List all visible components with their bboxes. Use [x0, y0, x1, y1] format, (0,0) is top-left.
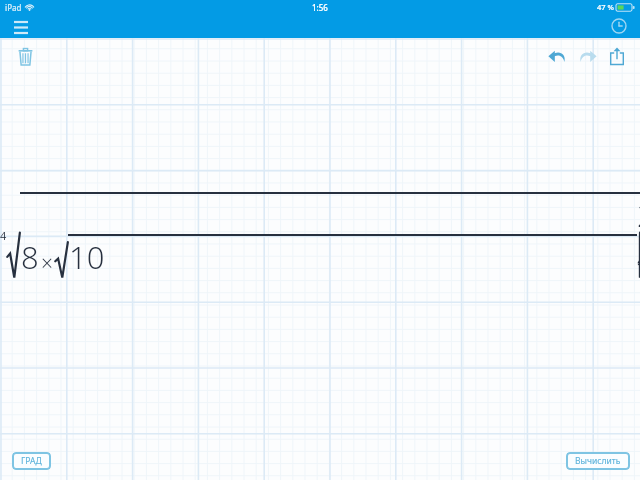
staticText: 10	[69, 236, 105, 278]
staticText: 47 %	[597, 2, 614, 12]
staticText: ×	[41, 249, 53, 278]
staticText: 4	[0, 228, 7, 243]
staticText: 1:56	[312, 2, 328, 13]
staticText: 8	[21, 236, 39, 278]
button[interactable]: Вычислить	[566, 452, 630, 470]
staticText: Вычислить	[575, 455, 621, 467]
button[interactable]: ГРАД	[12, 452, 51, 470]
staticText: ГРАД	[21, 455, 42, 467]
button[interactable]: History	[606, 14, 632, 38]
button[interactable]: Undo	[542, 41, 572, 71]
button[interactable]: Menu	[8, 14, 34, 38]
button[interactable]: Delete	[10, 41, 40, 71]
staticText: iPad	[5, 2, 22, 13]
button[interactable]: Redo	[572, 41, 602, 71]
button[interactable]: Share	[602, 41, 632, 71]
